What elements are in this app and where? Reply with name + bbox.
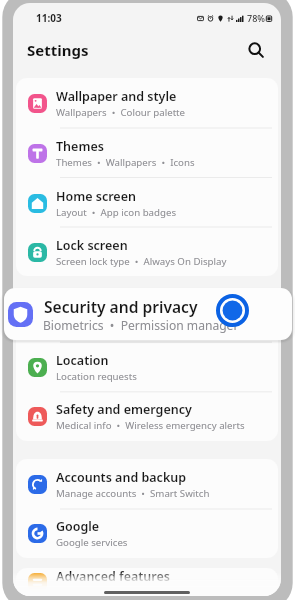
staticText: Themes (56, 138, 104, 155)
staticText: Security and privacy (56, 302, 180, 319)
button[interactable]: Accounts and backup (16, 459, 278, 509)
staticText: 11:03 (36, 11, 62, 25)
staticText: Accounts and backup (56, 469, 187, 486)
button[interactable]: Advanced features (16, 568, 278, 596)
staticText: Home screen (56, 188, 136, 205)
staticText: Biometrics • Permission manager (56, 320, 213, 333)
staticText: Location (56, 352, 109, 369)
staticText: Wallpapers • Colour palette (56, 106, 186, 119)
staticText: Wallpaper and style (56, 88, 177, 105)
staticText: Location requests (56, 370, 137, 383)
staticText: Layout • App icon badges (56, 206, 177, 219)
button[interactable]: Location (16, 342, 278, 392)
button[interactable]: Safety and emergency (16, 392, 278, 441)
button[interactable]: Lock screen (16, 228, 278, 276)
staticText: Safety and emergency (56, 401, 192, 418)
button[interactable]: Security and privacy (16, 292, 278, 342)
staticText: Manage accounts • Smart Switch (56, 487, 210, 500)
button[interactable]: Home screen (16, 178, 278, 228)
staticText: Settings (27, 40, 89, 60)
staticText: Lock screen (56, 237, 128, 254)
staticText: Google (56, 518, 100, 535)
button[interactable]: Themes (16, 128, 278, 178)
staticText: Labs • Side button (56, 586, 144, 596)
button[interactable]: Wallpaper and style (16, 78, 278, 128)
button[interactable]: Security and privacy (4, 288, 292, 340)
staticText: Biometrics • Permission manager (43, 317, 239, 333)
staticText: Google services (56, 536, 128, 549)
button[interactable]: Google (16, 509, 278, 558)
staticText: Themes • Wallpapers • Icons (56, 156, 195, 169)
staticText: Screen lock type • Always On Display (56, 255, 227, 268)
button[interactable]: Search (244, 38, 268, 62)
staticText: 78% (247, 12, 265, 24)
staticText: Medical info • Wireless emergency alerts (56, 419, 245, 432)
staticText: Security and privacy (44, 296, 198, 317)
staticText: Advanced features (56, 568, 170, 585)
